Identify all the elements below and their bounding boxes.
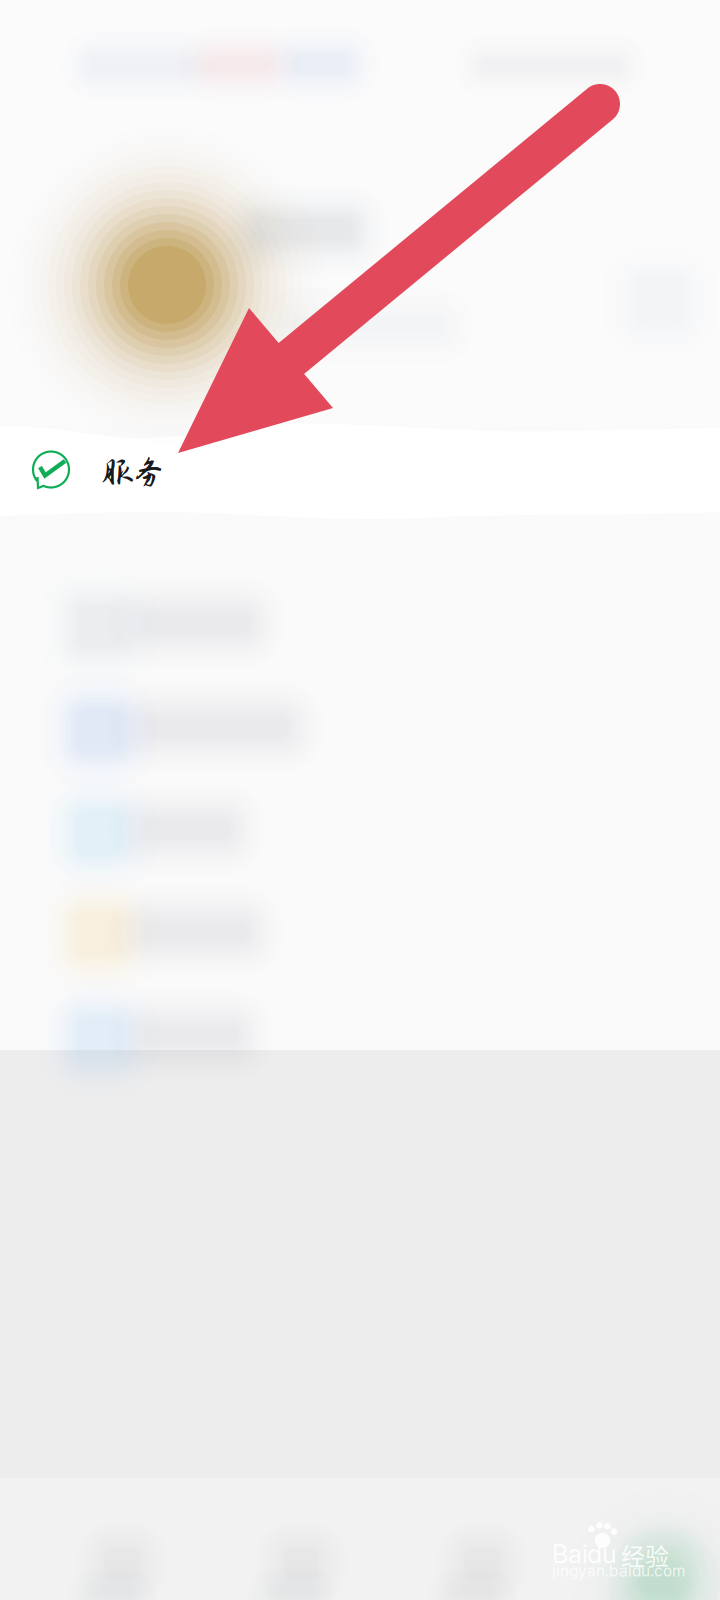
staticText: 经验 [621, 1538, 669, 1572]
staticText: 服务 [102, 455, 164, 490]
staticText: Bai [552, 1539, 588, 1569]
staticText: du [587, 1539, 617, 1569]
staticText: jingyan.baidu.com [552, 1562, 685, 1580]
